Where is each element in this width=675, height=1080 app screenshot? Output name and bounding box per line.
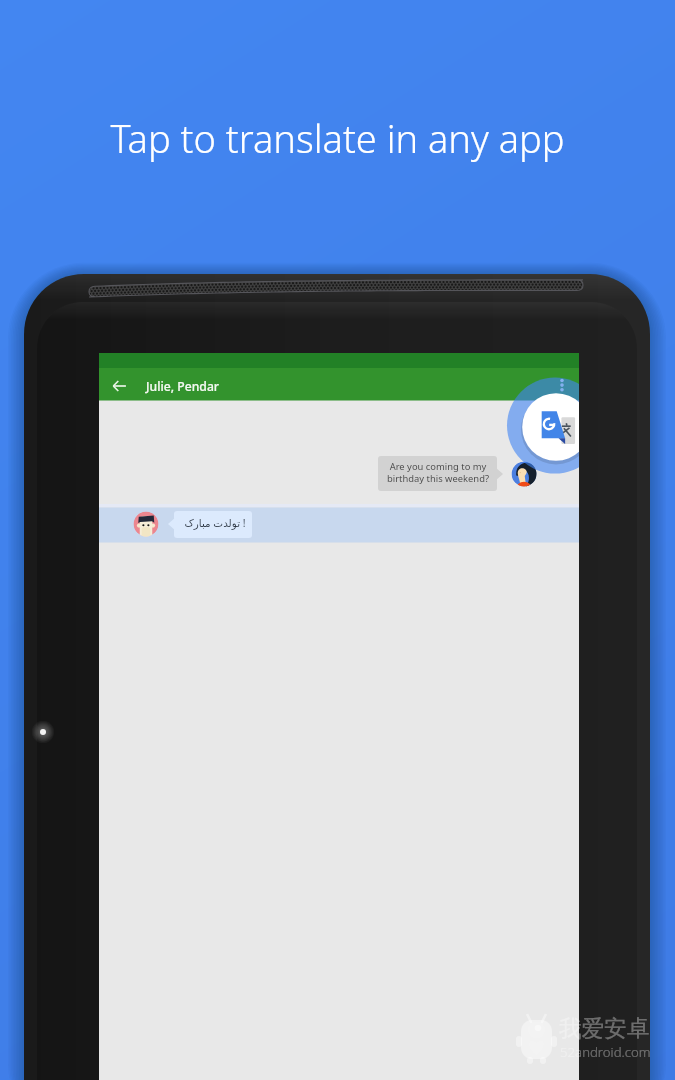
button[interactable]: Back xyxy=(105,372,133,400)
staticText: 我爱安卓 xyxy=(559,1014,650,1042)
staticText: Tap to translate in any app xyxy=(0,112,675,164)
staticText: تولدت مبارک ! xyxy=(178,516,252,530)
staticText: 52android.com xyxy=(560,1043,651,1061)
button[interactable]: Tap to translate xyxy=(523,395,579,459)
staticText: Are you coming to my birthday this weeke… xyxy=(379,460,497,485)
button[interactable]: More options xyxy=(552,372,574,400)
staticText: Julie, Pendar xyxy=(146,378,220,395)
